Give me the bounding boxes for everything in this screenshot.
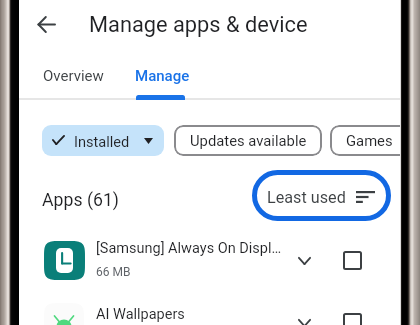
staticText: Updates available xyxy=(190,132,307,149)
button[interactable]: Games xyxy=(330,125,420,156)
staticText: Installed xyxy=(74,133,130,150)
staticText: AI Wallpapers xyxy=(96,306,185,323)
button[interactable]: Installed xyxy=(42,125,164,156)
button[interactable]: [Samsung] Always On Displ… xyxy=(0,226,420,288)
button[interactable]: Expand app details xyxy=(288,306,320,325)
button[interactable]: Back xyxy=(24,2,68,46)
button[interactable]: Overview xyxy=(24,56,122,96)
button[interactable]: Updates available xyxy=(174,125,322,156)
button[interactable]: Select app xyxy=(336,244,368,276)
staticText: [Samsung] Always On Displ… xyxy=(96,240,282,257)
staticText: 66 MB xyxy=(96,265,131,279)
staticText: Overview xyxy=(43,67,104,85)
button[interactable]: Least used xyxy=(262,178,382,214)
button[interactable]: Select app xyxy=(336,306,368,325)
staticText: Manage xyxy=(135,67,190,85)
staticText: Apps (61) xyxy=(42,190,120,211)
button[interactable]: Expand app details xyxy=(288,244,320,276)
staticText: Manage apps & device xyxy=(89,12,308,38)
button[interactable]: Manage xyxy=(124,56,200,96)
staticText: Games xyxy=(346,132,393,149)
button[interactable]: AI Wallpapers xyxy=(0,288,420,325)
staticText: Least used xyxy=(267,188,346,207)
